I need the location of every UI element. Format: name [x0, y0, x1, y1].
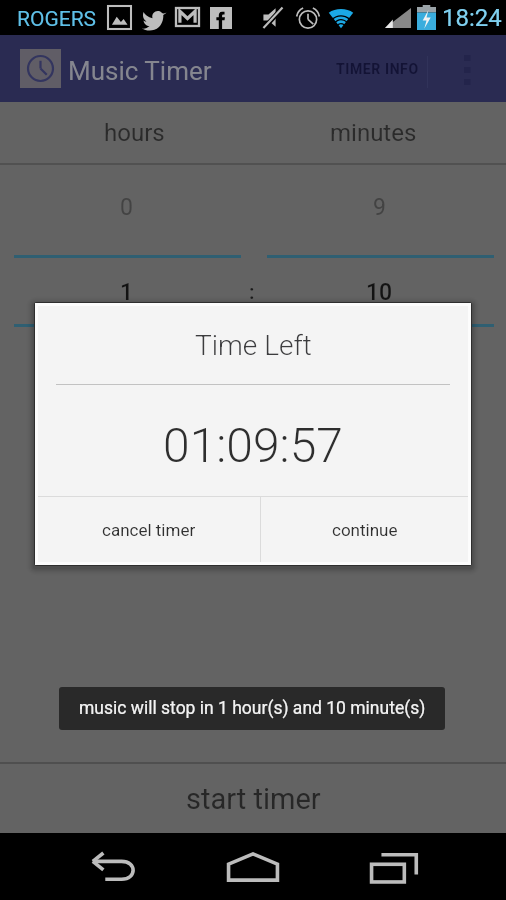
staticText: continue	[332, 520, 398, 540]
staticText: minutes	[330, 119, 417, 147]
staticText: hours	[104, 119, 165, 147]
staticText: 1	[120, 279, 134, 306]
button[interactable]: Back	[78, 841, 146, 893]
button[interactable]: cancel timer	[38, 497, 260, 562]
staticText: TIMER INFO	[336, 61, 419, 77]
staticText: start timer	[186, 782, 321, 816]
staticText: 10	[366, 279, 393, 306]
staticText: 01:09:57	[163, 417, 343, 473]
button[interactable]: continue	[261, 497, 468, 562]
staticText: 9	[373, 194, 386, 221]
staticText: cancel timer	[102, 520, 196, 540]
staticText: :	[249, 280, 255, 305]
staticText: 0	[120, 194, 133, 221]
staticText: music will stop in 1 hour(s) and 10 minu…	[79, 698, 426, 719]
button[interactable]: Home	[219, 841, 287, 893]
staticText: Time Left	[195, 329, 312, 362]
button[interactable]: TIMER INFO	[327, 35, 427, 102]
staticText: Music Timer	[68, 56, 212, 86]
button[interactable]: Recent apps	[361, 841, 429, 893]
staticText: ROGERS	[17, 7, 97, 32]
button[interactable]: start timer	[0, 764, 506, 833]
staticText: 18:24	[442, 4, 502, 32]
